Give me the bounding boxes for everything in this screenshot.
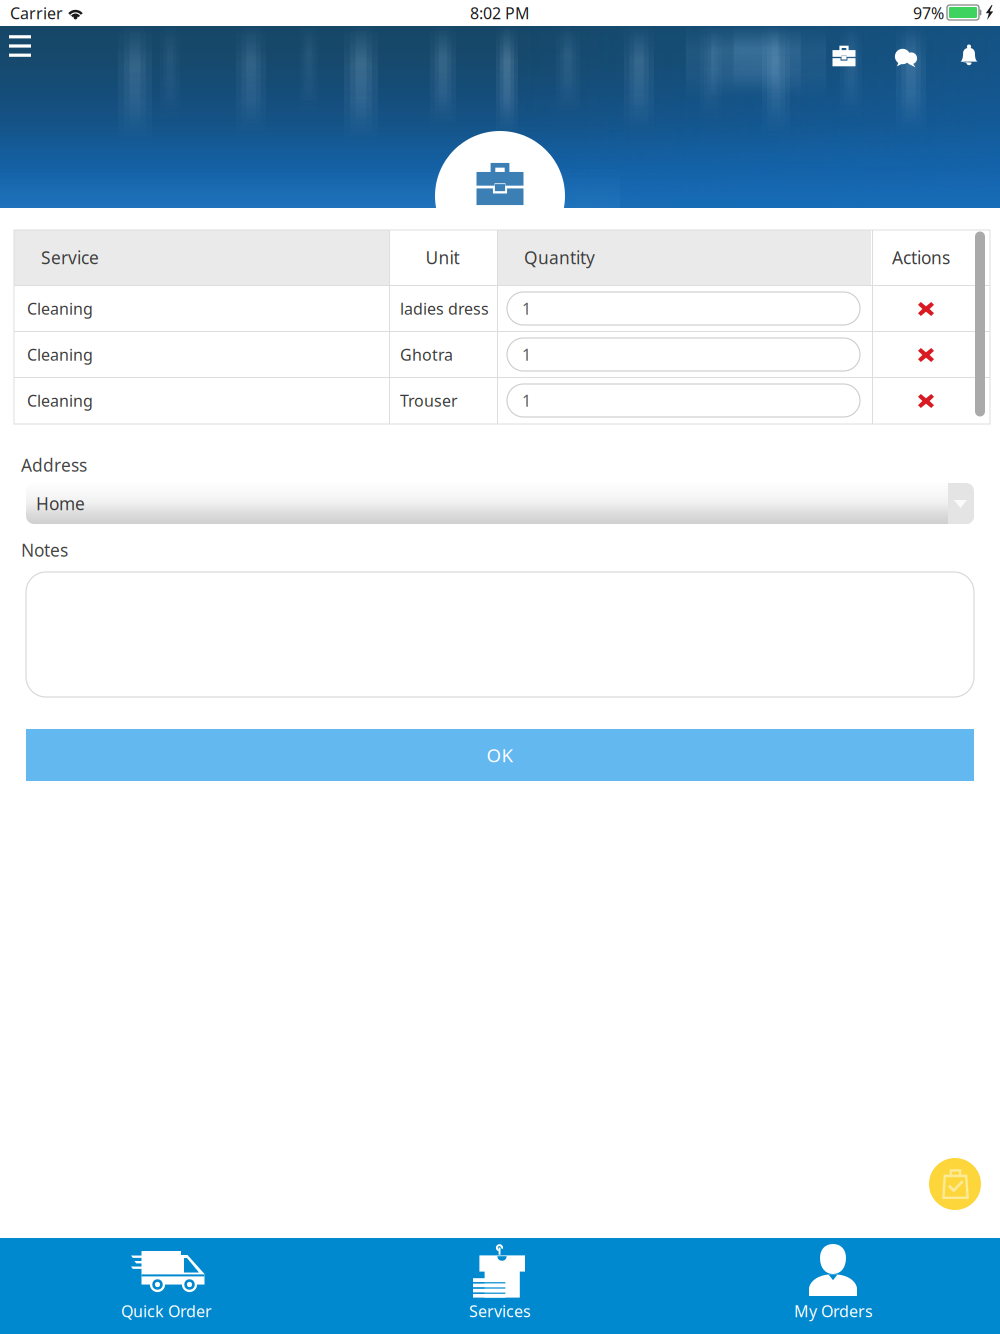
staticText: Cleaning [27,344,93,365]
staticText: 8:02 PM [470,2,530,24]
staticText: Cleaning [27,390,93,411]
staticText: 97% [913,2,944,24]
staticText: ladies dress [400,298,489,319]
button[interactable]: Menu [0,26,44,78]
button[interactable]: Services [333,1238,667,1334]
staticText: OK [486,743,513,767]
button[interactable]: Orders [816,34,872,84]
staticText: Address [21,453,87,476]
staticText: Services [469,1300,531,1322]
staticText: Cleaning [27,298,93,319]
staticText: Ghotra [400,344,453,365]
button[interactable]: Remove ladies dress [872,286,972,331]
staticText: 1 [522,344,531,365]
staticText: Carrier [10,2,63,24]
button[interactable]: My Orders [667,1238,1000,1334]
staticText: 1 [522,298,531,319]
button[interactable]: Quick Order [0,1238,333,1334]
button[interactable]: Cart [929,1158,981,1210]
button[interactable]: Notifications [941,34,997,84]
staticText: Actions [892,246,950,269]
button[interactable]: Remove Trouser [872,378,972,423]
button[interactable]: Messages [878,34,934,84]
staticText: Quick Order [121,1300,212,1322]
button[interactable]: Remove Ghotra [872,332,972,377]
staticText: My Orders [794,1300,873,1322]
staticText: Quantity [524,246,595,269]
staticText: Notes [21,538,68,561]
staticText: 1 [522,390,531,411]
staticText: Home [36,492,85,515]
staticText: Unit [425,246,459,269]
button[interactable]: OK [26,729,974,781]
staticText: Service [41,246,99,269]
staticText: Trouser [400,390,458,411]
button[interactable]: Notes [26,572,974,697]
button[interactable]: Address: Home [26,483,974,524]
